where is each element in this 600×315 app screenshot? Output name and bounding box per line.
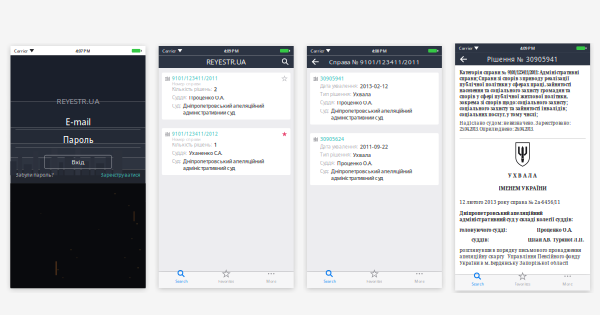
staticText: Ухвала — [353, 91, 371, 98]
staticText: 4:09 PM — [520, 45, 535, 51]
staticText: Тип рішення: — [320, 152, 351, 158]
staticText: Дніпропетровський апеляційний адміністра… — [459, 210, 572, 223]
staticText: Суддя: — [172, 150, 187, 156]
staticText: Проценко О.А. — [537, 227, 572, 233]
button[interactable]: 30905941 — [310, 73, 439, 124]
staticText: Суд: — [172, 102, 181, 109]
button[interactable]: 9101/123411/2012 — [162, 128, 290, 175]
staticText: 2011-09-22 — [360, 143, 388, 150]
staticText: Суддя: — [320, 160, 335, 166]
staticText: More — [563, 281, 573, 286]
staticText: Carrier — [459, 45, 473, 51]
staticText: Шлай А.В. Туряної Л.П. — [528, 237, 584, 243]
staticText: Номер справи — [172, 136, 201, 142]
staticText: Carrier — [14, 48, 28, 54]
staticText: Дніпропетровський апеляційний адміністра… — [331, 107, 412, 121]
button[interactable]: Favorites — [500, 274, 545, 290]
staticText: Favorites — [366, 279, 382, 284]
staticText: Кількість рішень: — [172, 86, 212, 92]
staticText: Дніпропетровський апеляційний адміністра… — [183, 158, 264, 171]
button[interactable]: Зареєструватися — [100, 172, 140, 178]
staticText: 9101/123411/2011 — [172, 75, 218, 81]
staticText: Ухвала — [353, 152, 371, 158]
staticText: Кількість рішень: — [172, 141, 212, 148]
button[interactable]: 30905624 — [310, 133, 439, 185]
staticText: 2013-02-12 — [360, 83, 388, 89]
button[interactable]: More — [397, 272, 442, 288]
staticText: Carrier — [310, 48, 324, 54]
button[interactable]: 9101/123411/2011 — [162, 73, 290, 119]
staticText: 1 — [214, 141, 217, 148]
button[interactable]: Favorite — [282, 76, 287, 81]
button[interactable]: More — [545, 274, 590, 290]
staticText: 30905941 — [320, 75, 344, 82]
staticText: Favorites — [515, 281, 531, 286]
staticText: Favorites — [218, 279, 234, 284]
staticText: 9101/123411/2012 — [172, 131, 218, 137]
staticText: розглянувши в порядку письмового провадж… — [459, 247, 581, 266]
staticText: Категорія справи № 9101/123411/2011: Адм… — [459, 70, 579, 118]
staticText: Carrier — [162, 48, 176, 54]
staticText: Дата ухвалення: — [320, 83, 358, 89]
staticText: Пароль — [63, 135, 93, 145]
staticText: ІМЕНЕМ УКРАЇНИ — [499, 185, 547, 192]
staticText: Проценко О.А. — [189, 94, 224, 101]
staticText: Вхід — [71, 158, 84, 166]
staticText: Суд: — [172, 158, 181, 164]
staticText: REYESTR.UA — [206, 57, 246, 67]
staticText: Дата ухвалення: — [320, 143, 358, 150]
staticText: REYESTR.UA — [56, 96, 99, 106]
staticText: 12 лютого 2013 року справа № 2а-6456/11 — [459, 199, 560, 205]
staticText: Зареєструватися — [100, 172, 140, 178]
button[interactable]: Favorite — [282, 131, 287, 137]
staticText: суддів: — [471, 237, 488, 243]
button[interactable]: Back — [312, 58, 319, 65]
button[interactable]: Favorites — [204, 272, 249, 288]
staticText: More — [266, 279, 276, 284]
button[interactable]: More — [249, 272, 294, 288]
staticText: 4:07 PM — [75, 48, 90, 54]
button[interactable]: Back — [460, 56, 467, 62]
button[interactable]: Search — [282, 58, 289, 65]
button[interactable]: Забули пароль? — [15, 172, 53, 178]
staticText: Search — [323, 279, 335, 284]
staticText: Справа № 9101/123411/2011 — [329, 58, 420, 66]
button[interactable]: Search — [159, 272, 204, 288]
staticText: Забули пароль? — [15, 172, 53, 178]
staticText: 4:08 PM — [372, 48, 387, 54]
staticText: E-mail — [65, 116, 90, 128]
staticText: Дніпропетровський апеляційний адміністра… — [183, 102, 264, 116]
staticText: Суддя: — [172, 94, 187, 101]
staticText: Проценко О.А. — [337, 99, 372, 106]
staticText: Тип рішення: — [320, 91, 351, 97]
staticText: More — [414, 279, 424, 284]
staticText: Рішення № 30905941 — [487, 55, 558, 63]
staticText: Номер справи — [172, 81, 201, 86]
staticText: У Х В А Л А — [508, 172, 537, 179]
staticText: Дніпропетровський апеляційний адміністра… — [331, 168, 412, 181]
staticText: Суддя: — [320, 99, 335, 106]
staticText: Search — [472, 281, 484, 286]
staticText: Суд: — [320, 107, 329, 114]
button[interactable]: Favorites — [352, 272, 397, 288]
button[interactable]: Вхід — [44, 155, 111, 168]
staticText: 30905624 — [320, 136, 344, 142]
button[interactable]: Search — [455, 274, 500, 290]
staticText: Надіслано судом: не визначено. Зареєстро… — [459, 120, 570, 132]
button[interactable]: Search — [307, 272, 352, 288]
staticText: Суд: — [320, 168, 329, 174]
staticText: 2 — [214, 86, 217, 93]
staticText: 4:09 PM — [224, 48, 239, 54]
staticText: Уханенко С.А. — [189, 150, 222, 156]
staticText: головуючого судді: — [459, 227, 506, 233]
staticText: Search — [175, 279, 187, 284]
staticText: Проценко О.А. — [337, 160, 372, 166]
